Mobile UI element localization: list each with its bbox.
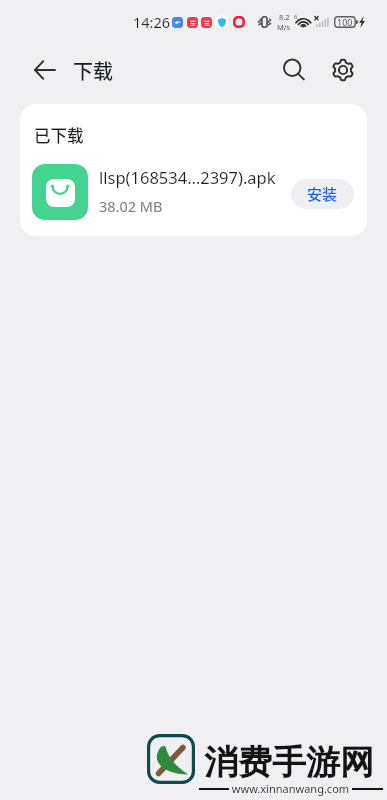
staticText: 已下载 bbox=[34, 123, 84, 147]
staticText: 100 bbox=[337, 16, 353, 28]
button[interactable]: Search bbox=[271, 48, 315, 92]
button[interactable]: 安装 bbox=[291, 179, 354, 209]
staticText: 下载 bbox=[73, 56, 113, 85]
staticText: www.xinnanwang.com bbox=[229, 781, 352, 796]
staticText: M/s bbox=[277, 22, 291, 32]
staticText: 6 bbox=[294, 13, 298, 21]
staticText: 38.02 MB bbox=[99, 196, 163, 216]
staticText: 消费手游网 bbox=[204, 741, 374, 784]
staticText: llsp(168534…2397).apk bbox=[99, 166, 276, 188]
staticText: 14:26 bbox=[133, 12, 171, 32]
button[interactable]: Settings bbox=[321, 48, 365, 92]
button[interactable]: Back bbox=[22, 47, 68, 93]
staticText: 8.2 bbox=[279, 12, 290, 22]
staticText: 安装 bbox=[307, 183, 338, 205]
button[interactable]: llsp(168534…2397).apk bbox=[20, 152, 367, 224]
